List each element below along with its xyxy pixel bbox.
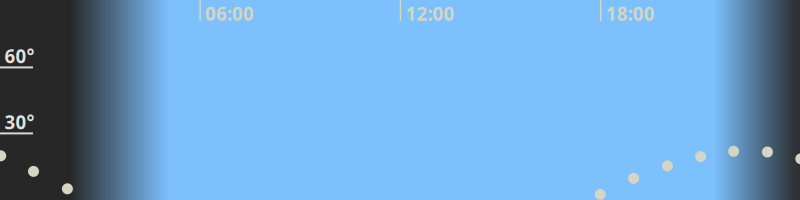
button[interactable]: Hourly temperature chart [0,0,800,200]
staticText: 12:00 [405,1,454,26]
staticText: 18:00 [606,1,655,26]
staticText: 06:00 [205,1,254,26]
staticText: 60° [4,44,34,68]
staticText: 30° [4,110,34,134]
